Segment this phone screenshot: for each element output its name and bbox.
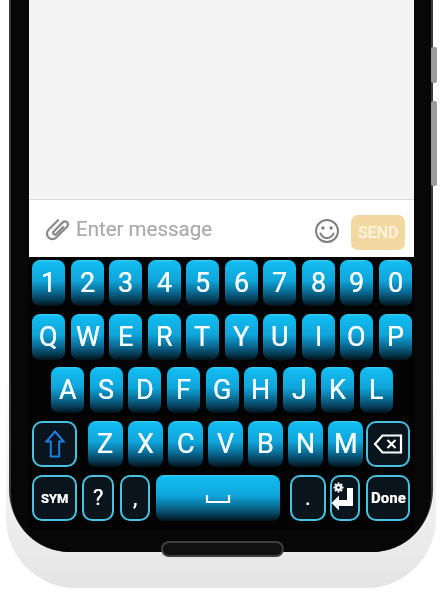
button[interactable]: D [128, 367, 161, 413]
staticText: I [315, 321, 323, 353]
staticText: 1 [41, 267, 57, 299]
button[interactable]: N [288, 421, 323, 467]
staticText: Q [39, 321, 58, 353]
button[interactable]: 6 [225, 260, 258, 306]
staticText: D [136, 374, 154, 406]
staticText: R [156, 321, 173, 353]
button[interactable]: K [321, 367, 354, 413]
button[interactable]: B [248, 421, 283, 467]
button[interactable]: F [167, 367, 200, 413]
staticText: 4 [157, 267, 173, 299]
button[interactable]: T [186, 314, 219, 360]
button[interactable] [32, 421, 77, 467]
staticText: 2 [80, 267, 96, 299]
button[interactable]: J [283, 367, 316, 413]
staticText: 6 [234, 267, 250, 299]
button[interactable]: I [302, 314, 335, 360]
staticText: E [118, 321, 134, 353]
button[interactable]: SYM [32, 475, 77, 521]
button[interactable]: H [244, 367, 277, 413]
button[interactable]: SEND [351, 215, 405, 250]
button[interactable] [330, 475, 360, 521]
button[interactable]: C [168, 421, 203, 467]
button[interactable]: ? [82, 475, 114, 521]
button[interactable]: Q [32, 314, 65, 360]
staticText: K [329, 374, 346, 406]
button[interactable]: 1 [32, 260, 65, 306]
button[interactable]: Z [88, 421, 123, 467]
staticText: Z [97, 428, 114, 460]
button[interactable]: X [128, 421, 163, 467]
button[interactable]: G [206, 367, 239, 413]
button[interactable]: O [340, 314, 373, 360]
button[interactable]: S [90, 367, 123, 413]
staticText: S [98, 374, 115, 406]
button[interactable]: 9 [340, 260, 373, 306]
staticText: 9 [349, 267, 365, 299]
staticText: 5 [195, 267, 211, 299]
button[interactable]: 7 [263, 260, 296, 306]
button[interactable]: P [379, 314, 412, 360]
staticText: T [194, 321, 211, 353]
staticText: L [369, 374, 384, 406]
button[interactable]: 5 [186, 260, 219, 306]
staticText: O [347, 321, 366, 353]
button[interactable]: A [51, 367, 84, 413]
button[interactable]: Done [366, 475, 410, 521]
staticText: 8 [311, 267, 327, 299]
button[interactable] [29, 200, 414, 257]
staticText: SYM [41, 491, 69, 506]
staticText: F [176, 374, 191, 406]
staticText: X [137, 428, 154, 460]
staticText: SEND [358, 223, 399, 242]
button[interactable] [315, 219, 339, 243]
button[interactable]: Y [225, 314, 258, 360]
staticText: G [213, 374, 232, 406]
staticText: H [251, 374, 271, 406]
button[interactable] [366, 421, 410, 467]
button[interactable]: L [360, 367, 393, 413]
button[interactable]: U [263, 314, 296, 360]
staticText: ? [93, 485, 104, 511]
staticText: Y [233, 321, 250, 353]
staticText: U [271, 321, 289, 353]
staticText: M [334, 428, 358, 460]
staticText: 3 [118, 267, 134, 299]
button[interactable]: 2 [71, 260, 104, 306]
staticText: W [76, 321, 100, 353]
staticText: J [292, 374, 307, 406]
staticText: N [296, 428, 316, 460]
staticText: 7 [272, 267, 288, 299]
button[interactable]: 3 [109, 260, 142, 306]
button[interactable]: 0 [379, 260, 412, 306]
button[interactable]: . [290, 475, 326, 521]
staticText: C [177, 428, 195, 460]
staticText: A [59, 374, 77, 406]
staticText: V [217, 428, 235, 460]
staticText: , [133, 485, 138, 511]
button[interactable]: V [208, 421, 243, 467]
button[interactable]: E [109, 314, 142, 360]
staticText: . [305, 485, 311, 511]
staticText: P [387, 321, 405, 353]
button[interactable]: , [120, 475, 150, 521]
staticText: 0 [388, 267, 404, 299]
staticText: Enter message [76, 217, 213, 241]
button[interactable]: 8 [302, 260, 335, 306]
button[interactable] [156, 475, 280, 521]
staticText: B [257, 428, 274, 460]
button[interactable]: R [148, 314, 181, 360]
button[interactable]: W [71, 314, 104, 360]
staticText: Done [371, 489, 406, 507]
button[interactable]: M [328, 421, 363, 467]
button[interactable]: 4 [148, 260, 181, 306]
